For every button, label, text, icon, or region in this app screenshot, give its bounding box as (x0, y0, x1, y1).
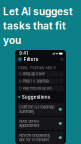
staticText: Book dentist appointment (19, 119, 39, 128)
button[interactable]: Prep 1:1 agenda (18, 78, 63, 84)
staticText: Draft the Q3 roadmap summary (19, 105, 54, 114)
staticText: Let AI suggest (3, 5, 73, 18)
staticText: Ring up Dave (23, 72, 45, 76)
button[interactable]: Ring up Dave (18, 71, 63, 77)
staticText: Prep 1:1 agenda (23, 79, 49, 83)
staticText: Review onboarding doc for 15 minutes (19, 133, 50, 142)
button[interactable]: App menu (18, 57, 22, 62)
staticText: Filters (24, 56, 39, 62)
staticText: you (3, 34, 21, 46)
staticText: tasks that fit (3, 20, 66, 32)
staticText: 9:41 (19, 51, 28, 56)
button[interactable]: Draft the Q3 roadmap summary (18, 103, 63, 116)
staticText: Suggestions (22, 94, 50, 100)
button[interactable]: Book dentist appointment (18, 117, 63, 130)
staticText: Pay electricity bill (23, 86, 52, 90)
button[interactable]: Review onboarding doc for 15 minutes (18, 131, 63, 144)
button[interactable]: Profile (60, 58, 63, 61)
button[interactable]: Pay electricity bill (18, 85, 63, 91)
staticText: Today, Thursday May 9 (18, 65, 56, 70)
